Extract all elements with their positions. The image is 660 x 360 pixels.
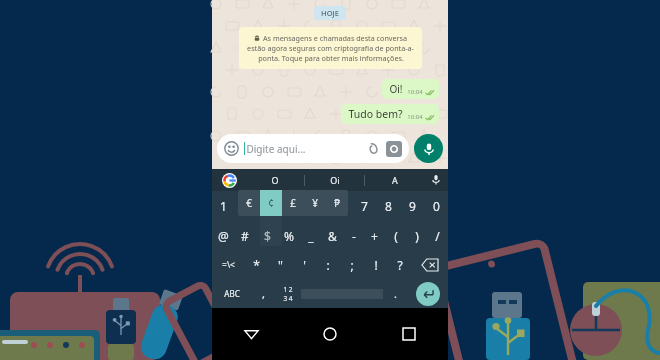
staticText: ) — [415, 228, 419, 244]
staticText: O — [271, 174, 279, 186]
staticText: $ — [264, 228, 271, 244]
button[interactable]: Recents — [369, 308, 448, 360]
staticText: , — [262, 286, 265, 301]
button[interactable]: Backspace — [412, 250, 448, 279]
button[interactable]: Oi! — [382, 79, 439, 99]
button[interactable]: Oi — [305, 169, 364, 191]
button[interactable]: _ — [300, 221, 322, 250]
button[interactable]: Digite aqui... — [217, 134, 409, 163]
button[interactable]: 8 — [376, 191, 400, 221]
button[interactable]: + — [364, 221, 385, 250]
staticText: As mensagens e chamadas desta conversa — [263, 33, 407, 43]
staticText: / — [435, 228, 440, 244]
staticText: Tudo bem? — [348, 107, 403, 121]
staticText: 10:04 — [407, 88, 423, 96]
button[interactable]: Voice message — [414, 134, 443, 163]
button[interactable]: ' — [292, 250, 316, 279]
button[interactable]: 5 — [304, 191, 328, 221]
button[interactable]: Attach — [366, 142, 380, 156]
staticText: 7 — [361, 198, 368, 214]
button[interactable]: =\< — [212, 250, 244, 279]
button[interactable]: Back — [212, 308, 290, 360]
staticText: : — [326, 257, 330, 273]
button[interactable]: 0 — [424, 191, 448, 221]
staticText: HOJE — [321, 8, 339, 18]
staticText: 9 — [409, 198, 416, 214]
staticText: 3 4 — [283, 294, 293, 303]
button[interactable]: Camera — [386, 141, 402, 157]
staticText: ₱ — [334, 196, 340, 210]
staticText: ABC — [224, 288, 240, 299]
button[interactable]: $ — [256, 221, 278, 250]
staticText: _ — [308, 228, 314, 244]
staticText: . — [394, 286, 397, 301]
staticText: 4 — [289, 198, 296, 214]
staticText: 1 2 — [283, 285, 293, 294]
button[interactable]: % — [278, 221, 300, 250]
staticText: - — [352, 228, 356, 244]
button[interactable]: 6 — [328, 191, 352, 221]
staticText: ¢ — [268, 196, 274, 210]
button[interactable]: 1 2 — [275, 279, 301, 308]
staticText: Oi! — [389, 82, 403, 96]
staticText: ! — [374, 257, 378, 273]
button[interactable]: . — [383, 279, 407, 308]
button[interactable]: 2 — [235, 191, 258, 221]
staticText: # — [241, 228, 249, 244]
staticText: 3 — [266, 198, 273, 214]
staticText: ? — [397, 257, 403, 273]
staticText: ' — [303, 257, 306, 273]
button[interactable]: - — [343, 221, 364, 250]
button[interactable]: ! — [364, 250, 388, 279]
button[interactable]: ) — [406, 221, 427, 250]
button[interactable]: Space — [301, 286, 383, 301]
staticText: € — [246, 196, 252, 210]
staticText: ¥ — [312, 196, 318, 210]
staticText: ; — [350, 257, 354, 273]
button[interactable]: # — [234, 221, 256, 250]
button[interactable]: HOJE — [314, 6, 346, 20]
staticText: @ — [218, 228, 229, 244]
button[interactable]: 3 — [258, 191, 281, 221]
button[interactable]: 9 — [400, 191, 424, 221]
button[interactable]: O — [246, 169, 304, 191]
staticText: 6 — [337, 198, 344, 214]
staticText: 10:04 — [407, 113, 423, 121]
button[interactable]: As mensagens e chamadas desta conversa — [239, 27, 422, 69]
button[interactable]: ? — [388, 250, 412, 279]
staticText: Oi — [330, 174, 340, 186]
staticText: Digite aqui... — [246, 142, 306, 156]
staticText: % — [284, 228, 294, 244]
staticText: =\< — [222, 259, 235, 271]
button[interactable]: Voice input — [424, 169, 448, 191]
button[interactable]: ABC — [212, 279, 251, 308]
button[interactable]: Google — [212, 169, 246, 191]
button[interactable]: @ — [212, 221, 234, 250]
button[interactable]: Home — [290, 308, 369, 360]
button[interactable]: 7 — [352, 191, 376, 221]
button[interactable]: , — [251, 279, 275, 308]
button[interactable]: & — [322, 221, 343, 250]
staticText: ( — [394, 228, 398, 244]
staticText: & — [328, 228, 337, 244]
button[interactable]: ( — [385, 221, 406, 250]
staticText: 1 — [220, 198, 227, 214]
staticText: ponta. Toque para obter mais informações… — [258, 53, 404, 63]
button[interactable]: : — [316, 250, 340, 279]
button[interactable]: 1 — [212, 191, 235, 221]
button[interactable]: * — [244, 250, 268, 279]
button[interactable]: € — [238, 190, 348, 216]
button[interactable]: Enter — [407, 279, 448, 308]
button[interactable]: ; — [340, 250, 364, 279]
staticText: 2 — [243, 198, 250, 214]
button[interactable]: Tudo bem? — [341, 104, 439, 124]
staticText: £ — [290, 196, 296, 210]
staticText: 0 — [433, 198, 440, 214]
staticText: * — [253, 257, 260, 273]
staticText: estão agora seguras com criptografia de … — [247, 43, 414, 53]
button[interactable]: " — [268, 250, 292, 279]
button[interactable]: 4 — [281, 191, 304, 221]
staticText: A — [392, 174, 398, 186]
button[interactable]: A — [365, 169, 424, 191]
button[interactable]: / — [427, 221, 448, 250]
